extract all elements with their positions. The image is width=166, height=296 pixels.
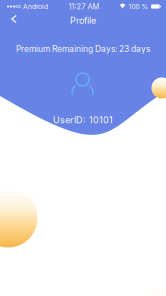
staticText: UserID: 10101 [53,114,113,125]
staticText: Profile [70,15,96,26]
button[interactable]: Back [2,7,22,29]
staticText: Premium Remaining Days: 23 days [16,44,150,54]
staticText: 11:27 AM [68,2,99,11]
staticText: 100 % [128,2,148,11]
staticText: Android [23,2,48,11]
